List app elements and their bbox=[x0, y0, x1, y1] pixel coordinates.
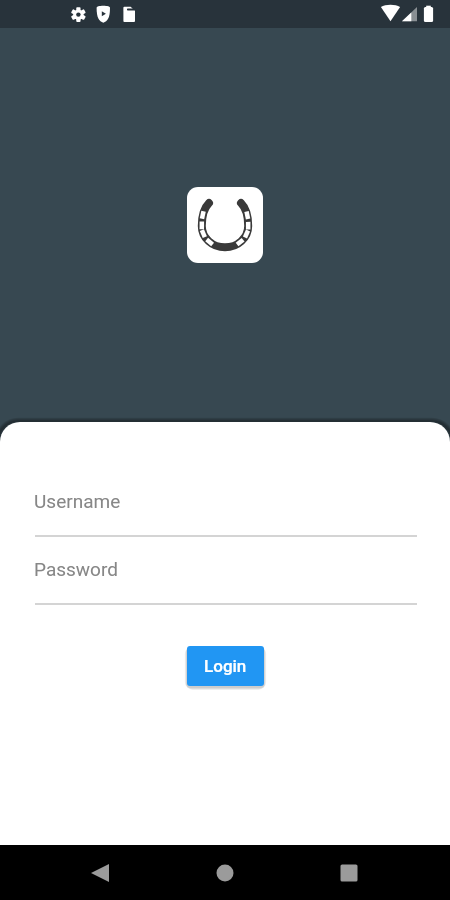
staticText: Password bbox=[34, 558, 118, 580]
other: App logo bbox=[187, 187, 263, 263]
button[interactable]: Home bbox=[201, 849, 249, 897]
button[interactable]: Recent apps bbox=[325, 849, 373, 897]
staticText: Username bbox=[34, 490, 121, 512]
button[interactable]: Back bbox=[76, 849, 124, 897]
staticText: Login bbox=[204, 656, 247, 676]
button[interactable]: Login bbox=[187, 646, 264, 686]
button[interactable]: Password bbox=[35, 558, 417, 605]
button[interactable]: Username bbox=[35, 490, 417, 537]
